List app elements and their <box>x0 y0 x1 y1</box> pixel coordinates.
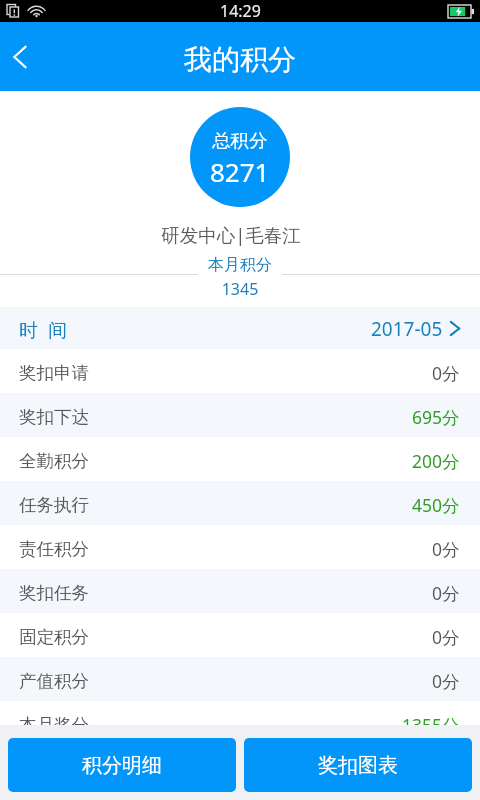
staticText: 8271 <box>210 154 270 189</box>
staticText: 奖扣图表 <box>318 753 398 778</box>
staticText: 固定积分 <box>19 626 89 648</box>
staticText: 1355分 <box>402 713 460 725</box>
button[interactable]: 奖扣任务 <box>0 569 480 613</box>
button[interactable]: 积分明细 <box>8 738 236 792</box>
staticText: 责任积分 <box>19 538 89 560</box>
staticText: 积分明细 <box>82 753 162 778</box>
staticText: 1345 <box>0 278 480 300</box>
staticText: 695分 <box>412 405 460 429</box>
staticText: 200分 <box>412 449 460 473</box>
staticText: 本月奖分 <box>19 714 89 725</box>
staticText: 奖扣下达 <box>19 406 89 428</box>
staticText: 0分 <box>432 581 460 605</box>
staticText: 2017-05 <box>371 316 443 342</box>
staticText: 0分 <box>432 537 460 561</box>
staticText: 产值积分 <box>19 670 89 692</box>
staticText: 450分 <box>412 493 460 517</box>
button[interactable]: 固定积分 <box>0 613 480 657</box>
button[interactable]: Back <box>0 22 56 91</box>
staticText: 本月积分 <box>208 255 272 275</box>
button[interactable]: 奖扣图表 <box>244 738 472 792</box>
button[interactable]: 任务执行 <box>0 481 480 525</box>
staticText: 0分 <box>432 361 460 385</box>
button[interactable]: 奖扣下达 <box>0 393 480 437</box>
button[interactable]: 全勤积分 <box>0 437 480 481</box>
staticText: 奖扣任务 <box>19 582 89 604</box>
staticText: 总积分 <box>212 129 268 152</box>
button[interactable]: 总积分 <box>190 107 290 207</box>
staticText: 研发中心|毛春江 <box>0 222 471 247</box>
staticText: 0分 <box>432 625 460 649</box>
button[interactable]: 产值积分 <box>0 657 480 701</box>
staticText: 0分 <box>432 669 460 693</box>
button[interactable]: 本月奖分 <box>0 701 480 725</box>
staticText: 时 间 <box>19 317 67 343</box>
staticText: 全勤积分 <box>19 450 89 472</box>
staticText: 任务执行 <box>19 494 89 516</box>
staticText: 奖扣申请 <box>19 362 89 384</box>
staticText: 我的积分 <box>184 42 296 77</box>
button[interactable]: 时 间 <box>0 307 480 349</box>
button[interactable]: 责任积分 <box>0 525 480 569</box>
staticText: 14:29 <box>220 0 261 22</box>
button[interactable]: 奖扣申请 <box>0 349 480 393</box>
